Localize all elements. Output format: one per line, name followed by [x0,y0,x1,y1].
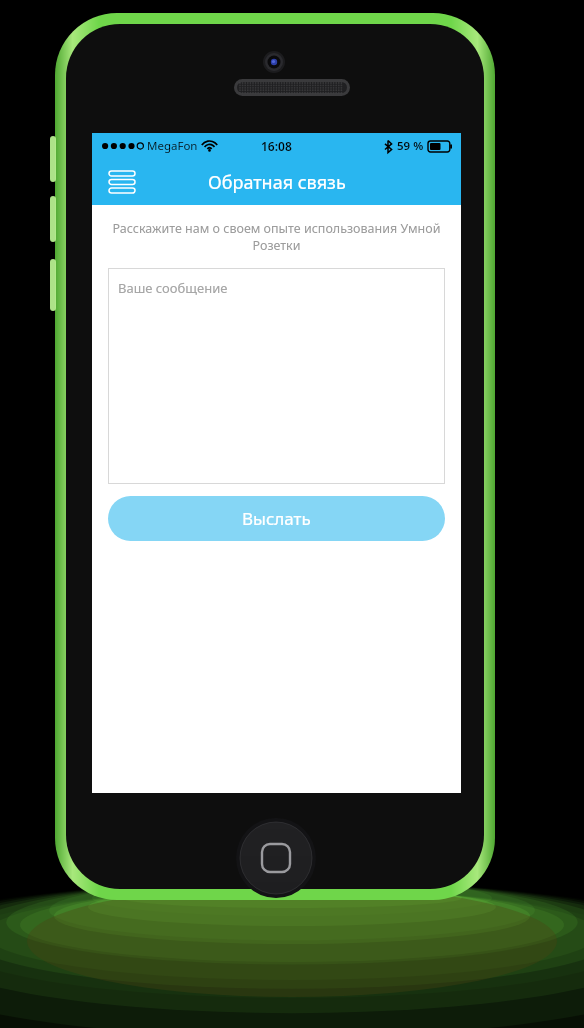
staticText: MegaFon [147,138,198,154]
staticText: 59 % [397,138,424,154]
button[interactable]: Menu [100,160,144,204]
button[interactable]: Ваше сообщение [108,268,445,484]
staticText: Выслать [242,507,311,530]
staticText: Обратная связь [208,170,346,195]
staticText: Расскажите нам о своем опыте использован… [108,220,445,254]
button[interactable]: Выслать [108,496,445,541]
staticText: 16:08 [261,138,292,154]
staticText: Ваше сообщение [118,279,228,297]
